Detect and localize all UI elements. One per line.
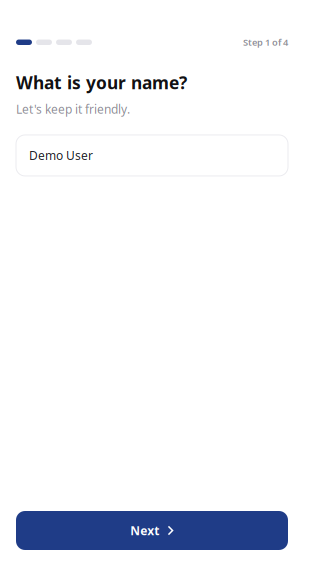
staticText: Step 1 of 4	[243, 36, 288, 48]
staticText: Let's keep it friendly.	[16, 101, 130, 117]
button[interactable]: Demo User	[16, 135, 288, 176]
staticText: Next	[130, 522, 159, 538]
staticText: What is your name?	[16, 71, 187, 94]
staticText: Demo User	[29, 147, 93, 163]
button[interactable]: Next	[16, 511, 288, 550]
